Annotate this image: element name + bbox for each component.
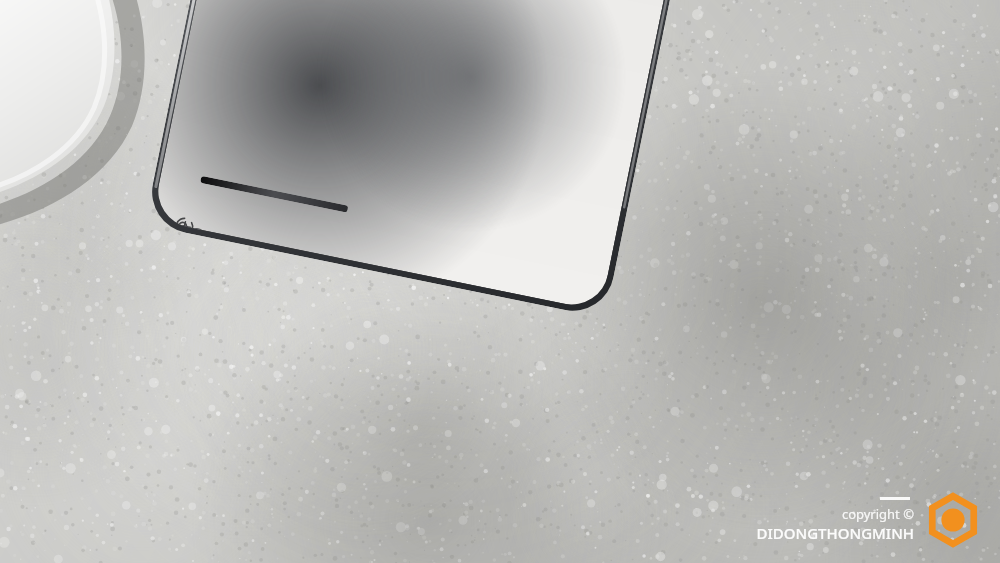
staticText: copyright © xyxy=(841,505,914,523)
button[interactable]: Sao lưu xyxy=(152,0,709,311)
button[interactable]: Didongthongminh logo xyxy=(924,491,982,549)
staticText: DIDONGTHONGMINH xyxy=(756,523,914,543)
